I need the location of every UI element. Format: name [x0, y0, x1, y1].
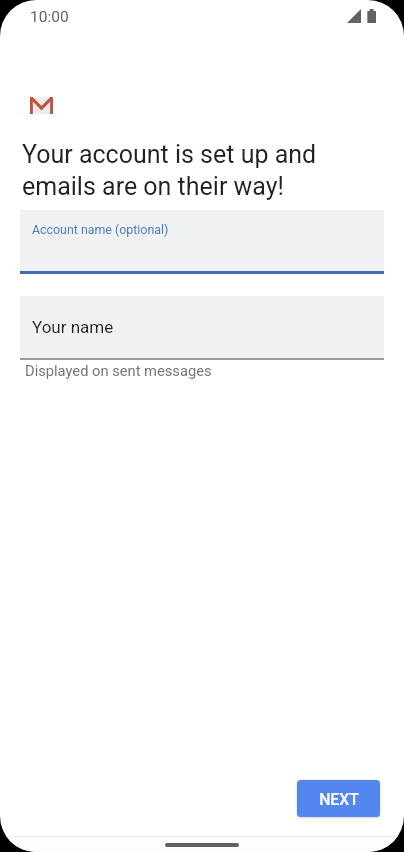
- staticText: Your account is set up and emails are on…: [22, 140, 342, 201]
- other: Home: [165, 843, 239, 847]
- staticText: Displayed on sent messages: [25, 362, 212, 379]
- button[interactable]: Account name (optional): [20, 210, 384, 274]
- staticText: Account name (optional): [32, 222, 169, 237]
- other: Gmail: [30, 97, 53, 114]
- staticText: NEXT: [319, 790, 359, 809]
- other: Signal and battery status: [347, 9, 376, 23]
- staticText: 10:00: [30, 8, 69, 26]
- staticText: Your name: [32, 317, 114, 337]
- button[interactable]: Your name: [20, 296, 384, 360]
- button[interactable]: NEXT: [297, 780, 380, 817]
